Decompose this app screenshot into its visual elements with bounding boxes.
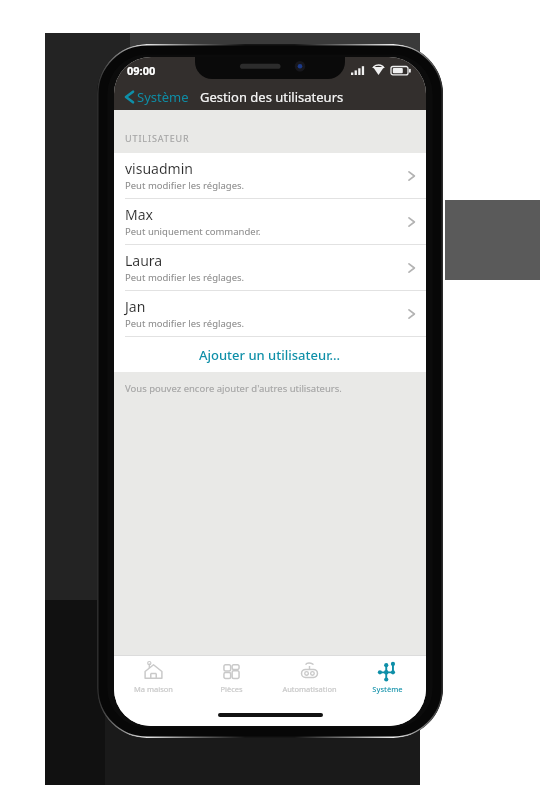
button[interactable]: Système	[120, 88, 193, 106]
staticText: Gestion des utilisateurs	[200, 88, 344, 106]
staticText: Max	[125, 205, 153, 224]
button[interactable]: Pièces	[192, 656, 270, 704]
staticText: Système	[137, 88, 189, 106]
staticText: visuadmin	[125, 159, 193, 178]
staticText: Vous pouvez encore ajouter d'autres util…	[125, 382, 342, 395]
button[interactable]: Max	[114, 199, 426, 245]
button[interactable]: Système	[348, 656, 426, 704]
staticText: Ma maison	[134, 684, 173, 694]
staticText: Laura	[125, 251, 163, 270]
button[interactable]: Jan	[114, 291, 426, 337]
staticText: Jan	[125, 297, 146, 316]
staticText: Système	[372, 684, 403, 694]
staticText: Automatisation	[282, 684, 337, 694]
staticText: UTILISATEUR	[125, 132, 190, 144]
button[interactable]: Laura	[114, 245, 426, 291]
button[interactable]: Ajouter un utilisateur...	[114, 337, 426, 372]
button[interactable]: visuadmin	[114, 153, 426, 199]
button[interactable]: Ma maison	[114, 656, 192, 704]
staticText: Peut modifier les réglages.	[125, 271, 245, 284]
staticText: Ajouter un utilisateur...	[199, 346, 341, 364]
staticText: Pièces	[220, 684, 243, 694]
staticText: 09:00	[127, 63, 156, 78]
staticText: Peut uniquement commander.	[125, 225, 261, 238]
staticText: Peut modifier les réglages.	[125, 317, 245, 330]
button[interactable]: Automatisation	[270, 656, 348, 704]
staticText: Peut modifier les réglages.	[125, 179, 245, 192]
